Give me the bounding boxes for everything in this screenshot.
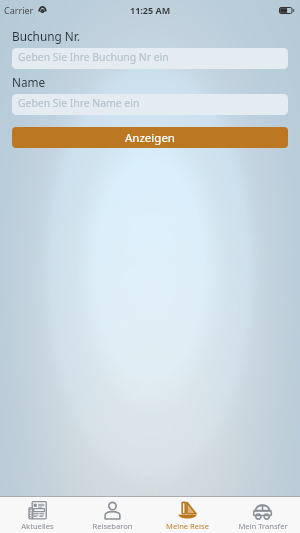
other: Reisebaron (103, 501, 122, 520)
button[interactable]: Aktuelles (0, 497, 75, 531)
other: Wi-Fi (38, 6, 47, 13)
button[interactable]: Geben Sie Ihre Name ein (12, 94, 288, 115)
staticText: Geben Sie Ihre Name ein (18, 96, 140, 110)
staticText: Meine Reise (166, 521, 209, 531)
staticText: Aktuelles (21, 521, 54, 531)
staticText: Carrier (4, 4, 34, 16)
staticText: Mein Transfer (238, 521, 288, 531)
button[interactable]: Mein Transfer (225, 497, 300, 531)
staticText: Anzeigen (125, 130, 175, 146)
other: Aktuelles (28, 501, 47, 520)
button[interactable]: Anzeigen (12, 127, 288, 148)
other: Meine Reise (178, 501, 197, 520)
other: Mein Transfer (253, 501, 272, 520)
button[interactable]: Reisebaron (75, 497, 150, 531)
staticText: Buchung Nr. (12, 28, 80, 44)
button[interactable]: Meine Reise (150, 497, 225, 531)
staticText: Reisebaron (92, 521, 133, 531)
staticText: Geben Sie Ihre Buchung Nr ein (18, 50, 169, 64)
staticText: 11:25 AM (130, 4, 171, 16)
staticText: Name (12, 74, 46, 90)
button[interactable]: Geben Sie Ihre Buchung Nr ein (12, 48, 288, 69)
